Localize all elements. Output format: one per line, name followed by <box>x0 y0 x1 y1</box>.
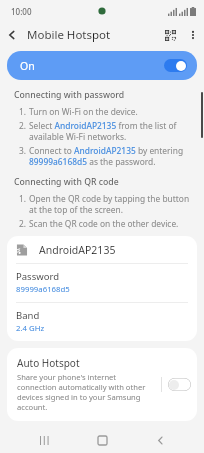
button[interactable]: Recent apps <box>30 428 58 453</box>
button[interactable]: Back <box>146 428 174 453</box>
staticText: 2. <box>19 218 29 229</box>
button[interactable]: AndroidAP2135 <box>7 236 197 263</box>
staticText: Auto Hotspot <box>17 356 80 370</box>
staticText: Open the QR code by tapping the button a… <box>29 193 190 215</box>
staticText: Turn on Wi-Fi on the device. <box>29 106 138 117</box>
button[interactable]: Password <box>7 264 197 302</box>
staticText: Band <box>16 309 40 322</box>
button[interactable]: Back <box>0 23 24 47</box>
button[interactable]: Show QR code <box>158 23 182 47</box>
staticText: Password <box>16 270 59 283</box>
staticText: Select AndroidAP2135 from the list of av… <box>29 120 190 142</box>
staticText: Scan the QR code on the other device. <box>29 218 179 229</box>
button[interactable]: Band <box>7 303 197 341</box>
staticText: 10:00 <box>11 6 32 17</box>
staticText: Connecting with QR code <box>14 176 119 188</box>
staticText: Mobile Hotspot <box>27 27 111 43</box>
button[interactable]: Auto Hotspot <box>7 348 197 421</box>
staticText: 1. <box>19 106 29 117</box>
staticText: On <box>20 59 35 73</box>
button[interactable]: Auto Hotspot toggle <box>168 378 191 391</box>
button[interactable]: On <box>7 51 197 80</box>
staticText: 89999a6168d5 <box>16 284 70 295</box>
staticText: 2. <box>19 120 29 131</box>
button[interactable]: More options <box>182 24 204 46</box>
staticText: 1. <box>19 193 29 204</box>
staticText: AndroidAP2135 <box>39 243 116 257</box>
staticText: 3. <box>19 145 29 156</box>
staticText: Connect to AndroidAP2135 by entering 899… <box>29 145 190 167</box>
staticText: Connecting with password <box>14 89 125 101</box>
staticText: 2.4 GHz <box>16 323 45 334</box>
button[interactable]: Home <box>88 428 116 453</box>
staticText: Share your phone's internet connection a… <box>17 372 155 412</box>
